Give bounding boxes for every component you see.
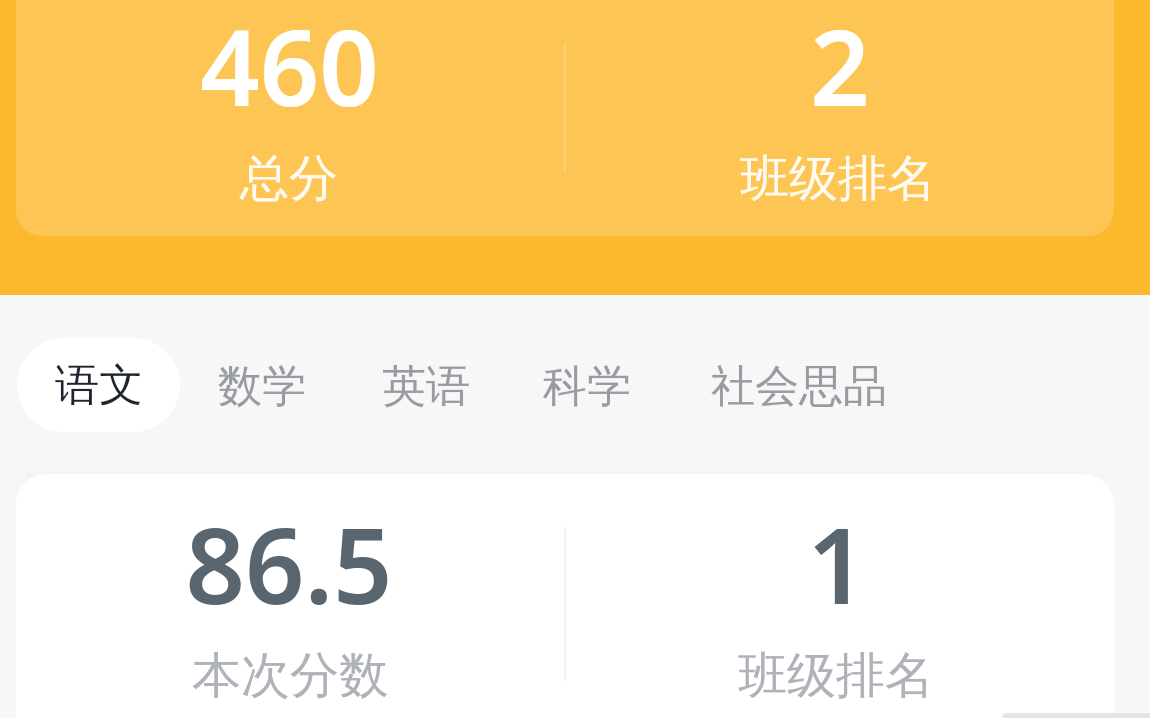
staticText: 英语 — [382, 359, 470, 414]
button[interactable] — [16, 0, 1114, 236]
button[interactable] — [16, 474, 1114, 718]
staticText: 语文 — [55, 358, 143, 413]
staticText: 科学 — [543, 359, 631, 414]
button[interactable]: 社会思品 — [689, 337, 909, 436]
button[interactable]: 英语 — [360, 337, 492, 436]
button[interactable]: 数学 — [196, 337, 328, 436]
staticText: 本次分数 — [192, 645, 388, 707]
staticText: 86.5 — [185, 493, 393, 635]
staticText: 460 — [200, 0, 379, 137]
staticText: 班级排名 — [738, 645, 934, 707]
staticText: 数学 — [218, 359, 306, 414]
staticText: 1 — [807, 493, 867, 635]
staticText: 2 — [810, 0, 870, 137]
button[interactable]: 科学 — [521, 337, 653, 436]
staticText: 班级排名 — [740, 148, 936, 210]
button[interactable]: 语文 — [17, 338, 180, 432]
staticText: 社会思品 — [711, 359, 887, 414]
staticText: 总分 — [240, 148, 338, 210]
